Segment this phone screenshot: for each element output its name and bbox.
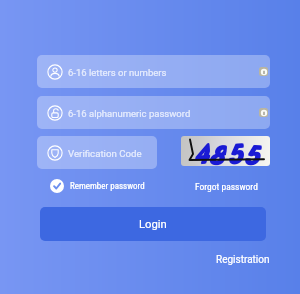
staticText: 8	[207, 138, 226, 166]
staticText: Verification Code	[68, 148, 142, 159]
staticText: 5	[243, 138, 261, 166]
staticText: 4	[193, 137, 211, 166]
staticText: Forgot password	[195, 181, 258, 192]
staticText: 6-16 alphanumeric password	[68, 108, 191, 119]
staticText: 8	[208, 139, 227, 166]
staticText: Remember password	[70, 181, 145, 192]
button[interactable]: Clear text	[259, 67, 268, 76]
button[interactable]: Registration	[216, 254, 270, 266]
staticText: 4	[192, 138, 210, 166]
staticText: Login	[139, 218, 167, 231]
button[interactable]: Refresh captcha	[181, 136, 270, 166]
staticText: 5	[226, 137, 244, 166]
staticText: 5	[226, 138, 244, 166]
button[interactable]: Remember password	[50, 179, 145, 193]
staticText: 5	[227, 138, 245, 166]
button[interactable]: Login	[40, 207, 266, 241]
button[interactable]: 6-16 alphanumeric password	[37, 96, 270, 129]
button[interactable]: Clear text	[259, 108, 268, 117]
staticText: Registration	[216, 254, 270, 266]
staticText: 4	[192, 137, 210, 166]
button[interactable]: 6-16 letters or numbers	[37, 55, 270, 88]
staticText: 8	[207, 139, 226, 166]
button[interactable]: Forgot password	[195, 181, 258, 192]
staticText: 5	[227, 137, 245, 166]
staticText: 4	[193, 138, 211, 166]
staticText: 5	[244, 139, 262, 166]
staticText: 8	[208, 138, 227, 166]
staticText: 5	[243, 139, 261, 166]
staticText: 6-16 letters or numbers	[68, 67, 167, 78]
button[interactable]: Verification Code	[37, 136, 157, 169]
staticText: 5	[244, 138, 262, 166]
